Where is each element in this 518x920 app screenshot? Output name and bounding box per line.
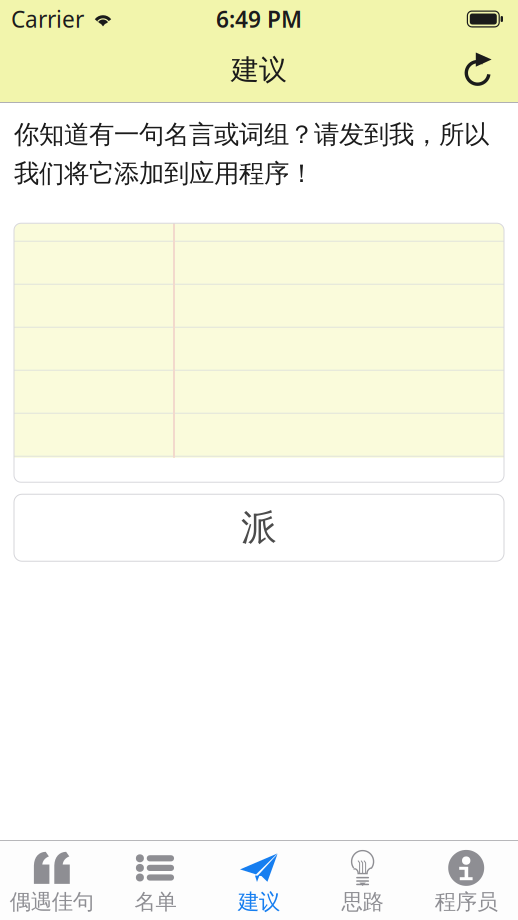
- staticText: 派: [241, 506, 277, 550]
- button[interactable]: 派: [0, 494, 518, 561]
- button[interactable]: 刷新: [452, 46, 518, 93]
- button[interactable]: 偶遇佳句: [0, 839, 104, 920]
- staticText: 偶遇佳句: [10, 889, 94, 915]
- button[interactable]: 思路: [311, 839, 414, 920]
- staticText: 名单: [134, 889, 176, 915]
- staticText: 6:49 PM: [216, 4, 302, 34]
- staticText: 程序员: [435, 889, 498, 915]
- staticText: 思路: [342, 889, 384, 915]
- button[interactable]: 名单: [104, 839, 207, 920]
- staticText: 你知道有一句名言或词组？请发到我，所以我们将它添加到应用程序！: [14, 119, 489, 189]
- staticText: 建议: [238, 889, 280, 915]
- staticText: Carrier: [11, 4, 84, 34]
- staticText: 建议: [231, 53, 287, 87]
- button[interactable]: 程序员: [414, 839, 518, 920]
- button[interactable]: 建议: [207, 839, 311, 920]
